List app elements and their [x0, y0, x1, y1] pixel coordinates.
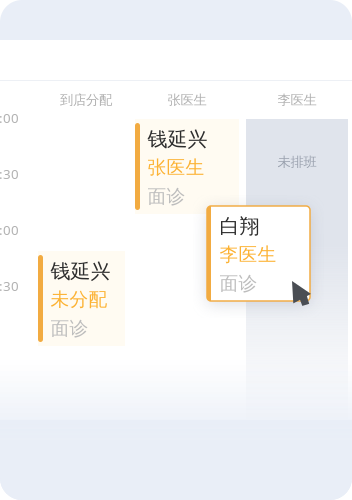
- staticText: 张医生: [167, 92, 206, 108]
- staticText: 未排班: [277, 154, 316, 170]
- staticText: 白翔: [219, 214, 259, 239]
- staticText: 到店分配: [60, 92, 112, 108]
- staticText: 李医生: [277, 92, 316, 108]
- staticText: :30: [0, 277, 19, 295]
- staticText: 李医生: [219, 243, 276, 266]
- button[interactable]: 钱延兴: [38, 251, 125, 346]
- staticText: 未分配: [50, 288, 107, 311]
- staticText: 钱延兴: [50, 259, 110, 284]
- staticText: :00: [0, 221, 19, 239]
- staticText: :30: [0, 165, 19, 183]
- button[interactable]: 白翔: [207, 206, 310, 301]
- staticText: 面诊: [50, 317, 88, 340]
- staticText: 面诊: [219, 272, 257, 295]
- staticText: 钱延兴: [147, 127, 207, 152]
- staticText: 面诊: [147, 185, 185, 208]
- button[interactable]: 钱延兴: [135, 119, 239, 214]
- staticText: 张医生: [147, 156, 204, 179]
- staticText: :00: [0, 109, 19, 127]
